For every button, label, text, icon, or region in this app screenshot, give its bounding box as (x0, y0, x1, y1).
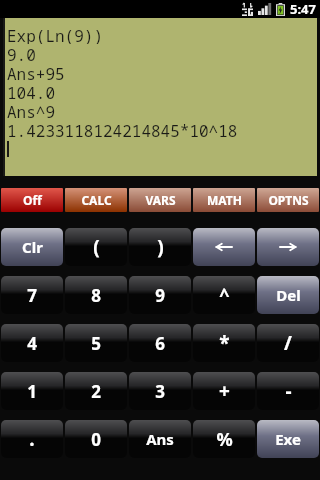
staticText: 5:47 (290, 0, 316, 18)
staticText: Exp(Ln(9)) (7, 25, 104, 44)
staticText: 9 (155, 284, 165, 307)
staticText: Off (23, 192, 42, 208)
button[interactable]: - (257, 372, 319, 410)
staticText: Clr (22, 237, 43, 257)
button[interactable]: Clr (1, 228, 63, 266)
staticText: Exe (275, 429, 301, 449)
button[interactable]: 0 (65, 420, 127, 458)
button[interactable]: ) (129, 228, 191, 266)
staticText: 9.0 (7, 44, 36, 63)
staticText: 8 (91, 284, 101, 307)
staticText: 1 (27, 380, 37, 403)
button[interactable]: 1 (1, 372, 63, 410)
button[interactable]: Cursor left (193, 228, 255, 266)
staticText: ^ (219, 283, 230, 308)
button[interactable]: ( (65, 228, 127, 266)
staticText: 3 (155, 380, 165, 403)
staticText: VARS (145, 192, 176, 208)
button[interactable]: OPTNS (257, 188, 319, 212)
button[interactable]: 4 (1, 324, 63, 362)
staticText: . (29, 426, 35, 452)
button[interactable]: 8 (65, 276, 127, 314)
staticText: OPTNS (268, 192, 309, 208)
staticText: + (219, 378, 230, 404)
staticText: 7 (27, 284, 37, 307)
staticText: Ans+95 (7, 63, 65, 82)
button[interactable]: + (193, 372, 255, 410)
staticText: / (284, 330, 292, 356)
button[interactable]: MATH (193, 188, 255, 212)
staticText: 0 (91, 428, 101, 451)
button[interactable]: 6 (129, 324, 191, 362)
staticText: ) (157, 234, 164, 260)
button[interactable]: Exe (257, 420, 319, 458)
button[interactable]: / (257, 324, 319, 362)
button[interactable]: Off (1, 188, 63, 212)
staticText: MATH (207, 192, 242, 208)
button[interactable]: % (193, 420, 255, 458)
staticText: % (216, 427, 233, 452)
staticText: 104.0 (7, 82, 56, 101)
button[interactable]: 2 (65, 372, 127, 410)
button[interactable]: 3 (129, 372, 191, 410)
button[interactable]: CALC (65, 188, 127, 212)
button[interactable]: 7 (1, 276, 63, 314)
button[interactable]: 9 (129, 276, 191, 314)
button[interactable]: * (193, 324, 255, 362)
staticText: Del (276, 285, 301, 305)
staticText: 1.4233118124214845*10^18 (7, 120, 238, 139)
button[interactable]: VARS (129, 188, 191, 212)
button[interactable]: 5 (65, 324, 127, 362)
staticText: 5 (91, 332, 101, 355)
staticText: 6 (155, 332, 165, 355)
button[interactable]: Del (257, 276, 319, 314)
staticText: 2 (91, 380, 101, 403)
staticText: Ans^9 (7, 101, 56, 120)
button[interactable]: Ans (129, 420, 191, 458)
button[interactable]: Cursor right (257, 228, 319, 266)
staticText: 4 (27, 332, 37, 355)
staticText: ( (93, 234, 100, 260)
button[interactable]: ^ (193, 276, 255, 314)
staticText: * (219, 330, 230, 356)
button[interactable]: . (1, 420, 63, 458)
staticText: Ans (146, 429, 174, 449)
staticText: CALC (81, 192, 112, 208)
staticText: - (285, 378, 292, 404)
